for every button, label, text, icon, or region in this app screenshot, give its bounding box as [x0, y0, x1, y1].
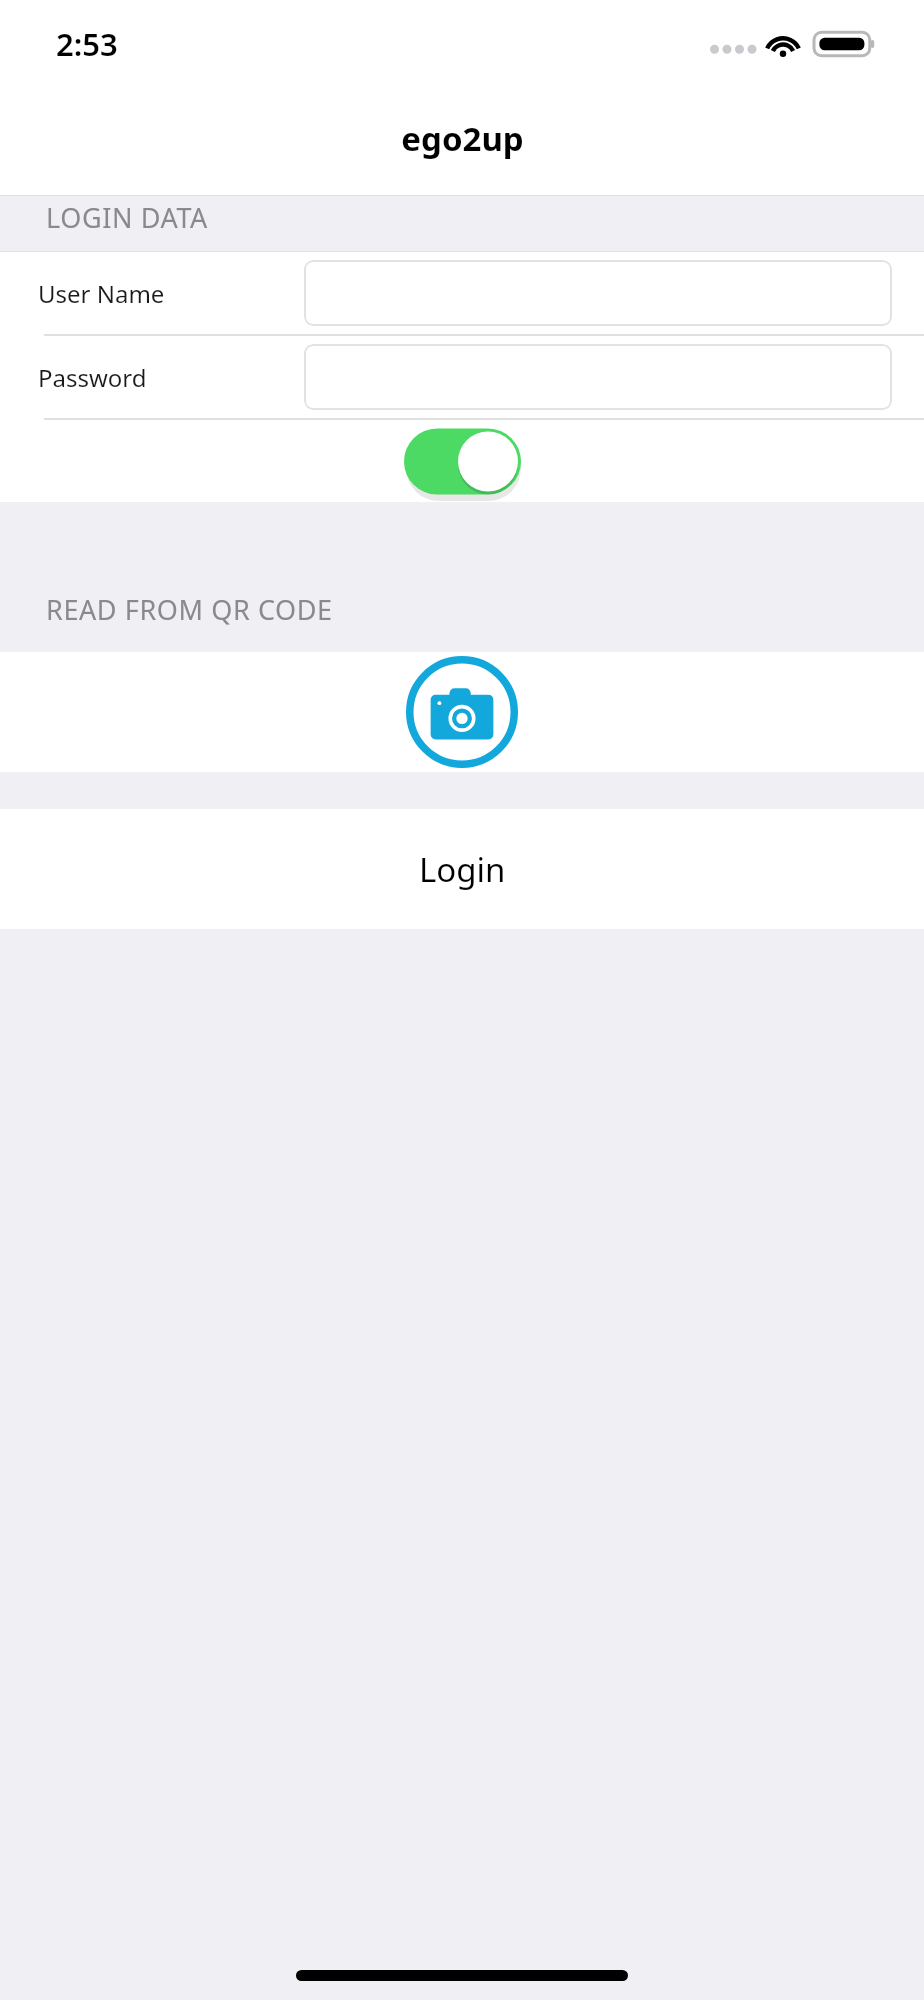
staticText: 2:53: [56, 23, 118, 65]
staticText: Password: [38, 361, 147, 394]
staticText: READ FROM QR CODE: [46, 591, 333, 628]
staticText: User Name: [38, 277, 165, 310]
staticText: ego2up: [401, 116, 524, 161]
button[interactable]: Login: [0, 809, 924, 929]
button[interactable]: [404, 428, 521, 495]
button[interactable]: [304, 260, 892, 326]
button[interactable]: Read from QR code with camera: [0, 652, 924, 772]
staticText: LOGIN DATA: [46, 199, 208, 236]
staticText: Login: [419, 847, 506, 892]
button[interactable]: [304, 344, 892, 410]
